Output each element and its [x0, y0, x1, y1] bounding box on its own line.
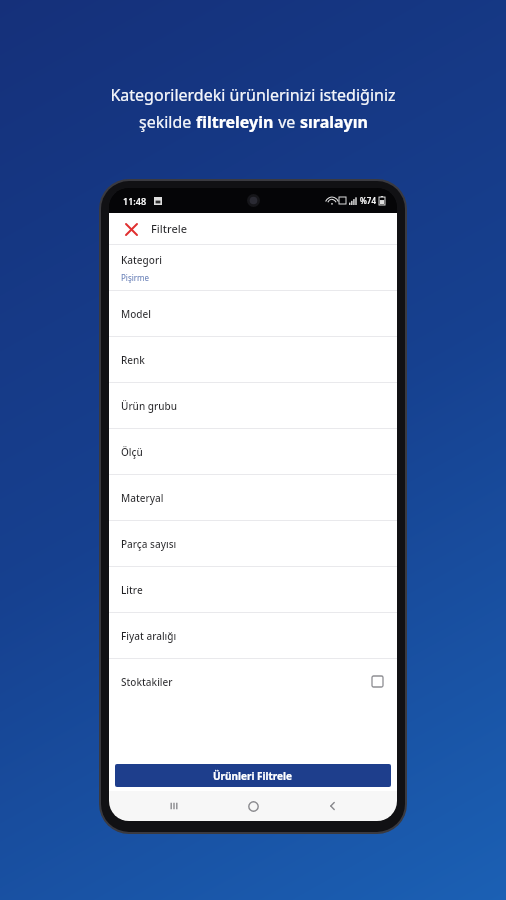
button[interactable]: Stoktakiler [109, 659, 397, 704]
button[interactable]: Model [109, 291, 397, 336]
staticText: Stoktakiler [121, 675, 173, 689]
button[interactable]: Geri [318, 791, 348, 821]
button[interactable]: Renk [109, 337, 397, 382]
button[interactable]: Materyal [109, 475, 397, 520]
staticText: filtreleyin [196, 111, 274, 133]
staticText: şekilde [139, 111, 196, 133]
button[interactable]: Kapat [121, 219, 141, 239]
staticText: Parça sayısı [121, 537, 177, 551]
button[interactable]: Fiyat aralığı [109, 613, 397, 658]
staticText: Ürün grubu [121, 399, 177, 413]
staticText: Renk [121, 353, 145, 367]
staticText: Litre [121, 583, 143, 597]
staticText: Ölçü [121, 445, 143, 459]
staticText: Fiyat aralığı [121, 629, 177, 643]
button[interactable]: Ürünleri Filtrele [115, 764, 391, 787]
button[interactable]: Ölçü [109, 429, 397, 474]
staticText: ve [274, 111, 300, 133]
button[interactable]: Son uygulamalar [159, 791, 189, 821]
staticText: Pişirme [121, 272, 150, 283]
button[interactable]: Parça sayısı [109, 521, 397, 566]
staticText: Model [121, 307, 151, 321]
staticText: %74 [360, 195, 376, 206]
staticText: Kategorilerdeki ürünlerinizi istediğiniz [110, 84, 396, 106]
button[interactable]: Ürün grubu [109, 383, 397, 428]
button[interactable]: Ana ekran [238, 791, 268, 821]
staticText: 11:48 [123, 195, 147, 207]
staticText: Materyal [121, 491, 164, 505]
staticText: Ürünleri Filtrele [213, 769, 293, 783]
button[interactable]: Kapat [109, 213, 397, 244]
button[interactable]: Litre [109, 567, 397, 612]
staticText: Filtrele [151, 221, 187, 236]
staticText: Kategori [121, 253, 162, 267]
button[interactable]: Kategori [109, 245, 397, 290]
staticText: sıralayın [300, 111, 368, 133]
